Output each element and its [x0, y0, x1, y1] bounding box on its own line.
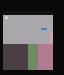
button[interactable]: Contact	[5, 16, 8, 19]
